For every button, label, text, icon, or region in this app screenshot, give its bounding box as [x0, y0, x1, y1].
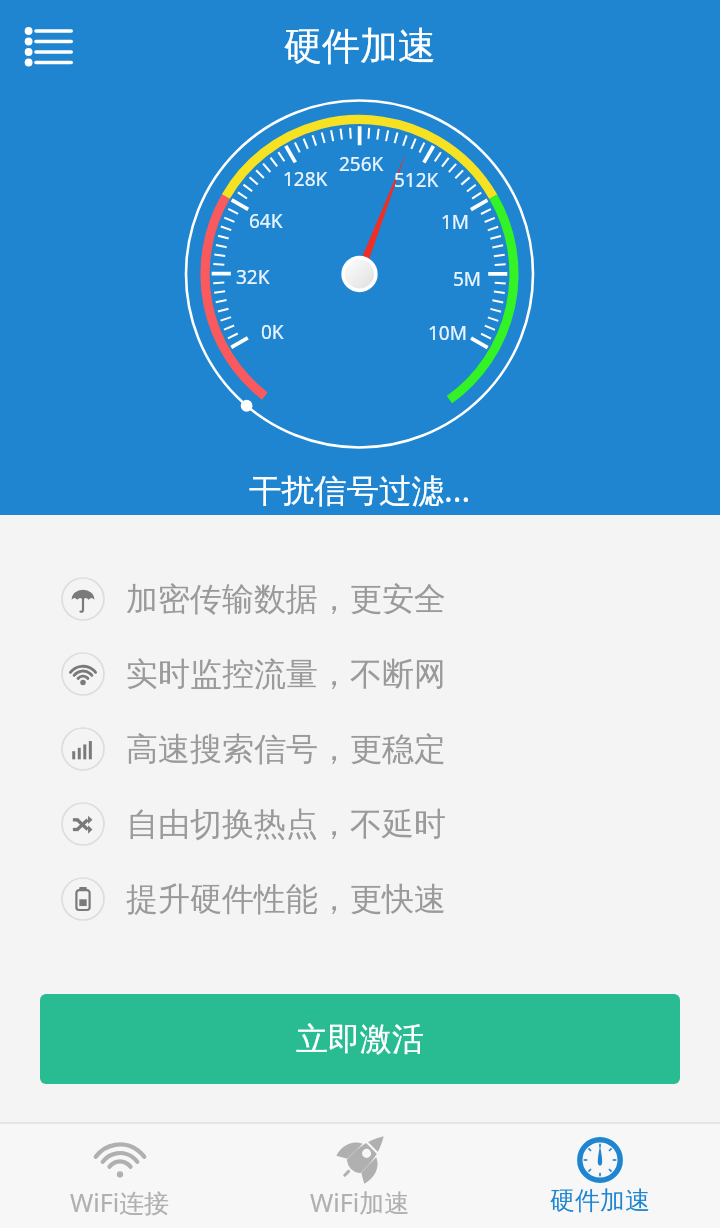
staticText: 10M [428, 320, 467, 346]
staticText: 高速搜索信号，更稳定 [126, 729, 446, 769]
button[interactable]: 自由切换热点，不延时 [0, 786, 720, 861]
staticText: 64K [249, 208, 283, 234]
staticText: 128K [283, 166, 328, 192]
button[interactable]: 高速搜索信号，更稳定 [0, 711, 720, 786]
staticText: 自由切换热点，不延时 [126, 804, 446, 844]
button[interactable]: 立即激活 [40, 994, 680, 1084]
staticText: 0K [261, 319, 284, 345]
staticText: 实时监控流量，不断网 [126, 654, 446, 694]
staticText: 1M [441, 209, 470, 235]
staticText: 硬件加速 [284, 22, 436, 70]
staticText: 加密传输数据，更安全 [126, 579, 446, 619]
button[interactable]: Menu [12, 14, 84, 80]
staticText: 提升硬件性能，更快速 [126, 879, 446, 919]
button[interactable]: WiFi加速 [240, 1124, 480, 1228]
staticText: 干扰信号过滤... [249, 467, 471, 511]
staticText: WiFi加速 [310, 1185, 410, 1219]
staticText: 32K [236, 264, 270, 290]
button[interactable]: 提升硬件性能，更快速 [0, 861, 720, 936]
button[interactable]: 加密传输数据，更安全 [0, 561, 720, 636]
staticText: WiFi连接 [70, 1185, 170, 1219]
staticText: 256K [339, 151, 384, 177]
staticText: 立即激活 [296, 1019, 424, 1059]
button[interactable]: 硬件加速 [480, 1124, 720, 1228]
staticText: 硬件加速 [550, 1185, 650, 1216]
staticText: 512K [394, 167, 439, 193]
button[interactable]: 实时监控流量，不断网 [0, 636, 720, 711]
button[interactable]: WiFi连接 [0, 1124, 240, 1228]
staticText: 5M [453, 266, 482, 292]
